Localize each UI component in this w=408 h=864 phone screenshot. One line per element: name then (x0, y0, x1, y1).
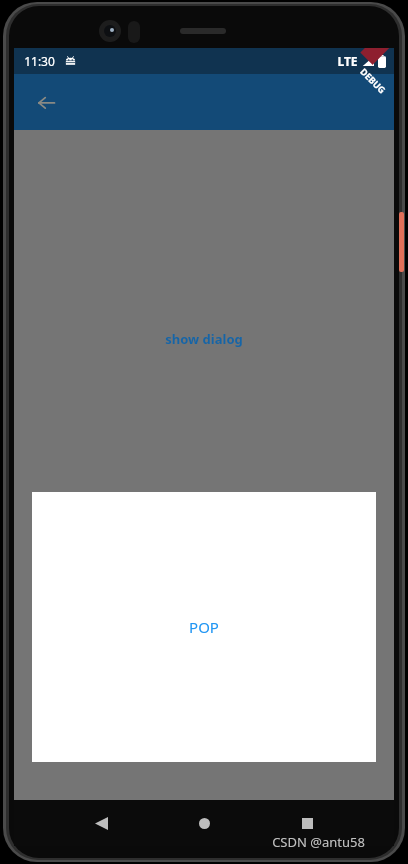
staticText: POP (189, 617, 219, 637)
button[interactable]: Recent apps (290, 806, 324, 840)
button[interactable]: Home (187, 806, 221, 840)
staticText: 11:30 (24, 53, 55, 69)
staticText: CSDN @antu58 (272, 833, 365, 851)
button[interactable]: show dialog (153, 324, 255, 354)
button[interactable]: Back (24, 80, 68, 124)
staticText: LTE (337, 53, 358, 69)
button[interactable]: POP (32, 492, 376, 762)
staticText: show dialog (165, 330, 243, 348)
button[interactable]: Back (84, 806, 118, 840)
staticText: DEBUG (358, 65, 389, 96)
button[interactable]: POP (175, 609, 233, 645)
